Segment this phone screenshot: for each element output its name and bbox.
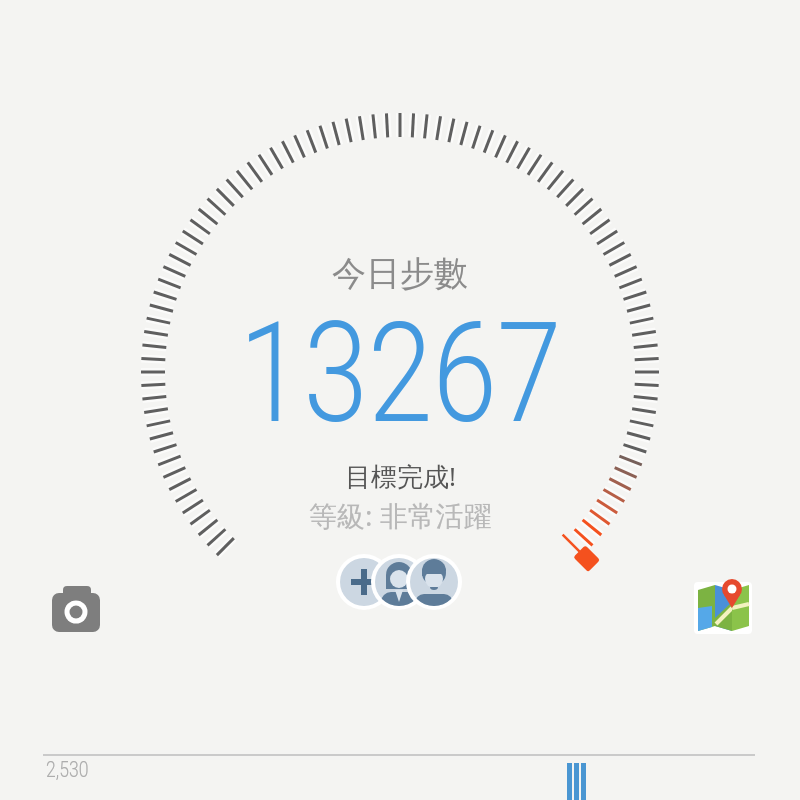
button[interactable] bbox=[336, 554, 392, 610]
staticText: 13267 bbox=[239, 291, 562, 455]
staticText: 2,530 bbox=[46, 757, 89, 783]
staticText: 目標完成! bbox=[345, 458, 456, 494]
button[interactable] bbox=[48, 583, 104, 639]
staticText: 等級: 非常活躍 bbox=[309, 496, 492, 534]
button[interactable] bbox=[406, 554, 462, 610]
staticText: 今日步數 bbox=[332, 252, 468, 295]
button[interactable] bbox=[371, 554, 427, 610]
button[interactable] bbox=[692, 574, 754, 636]
